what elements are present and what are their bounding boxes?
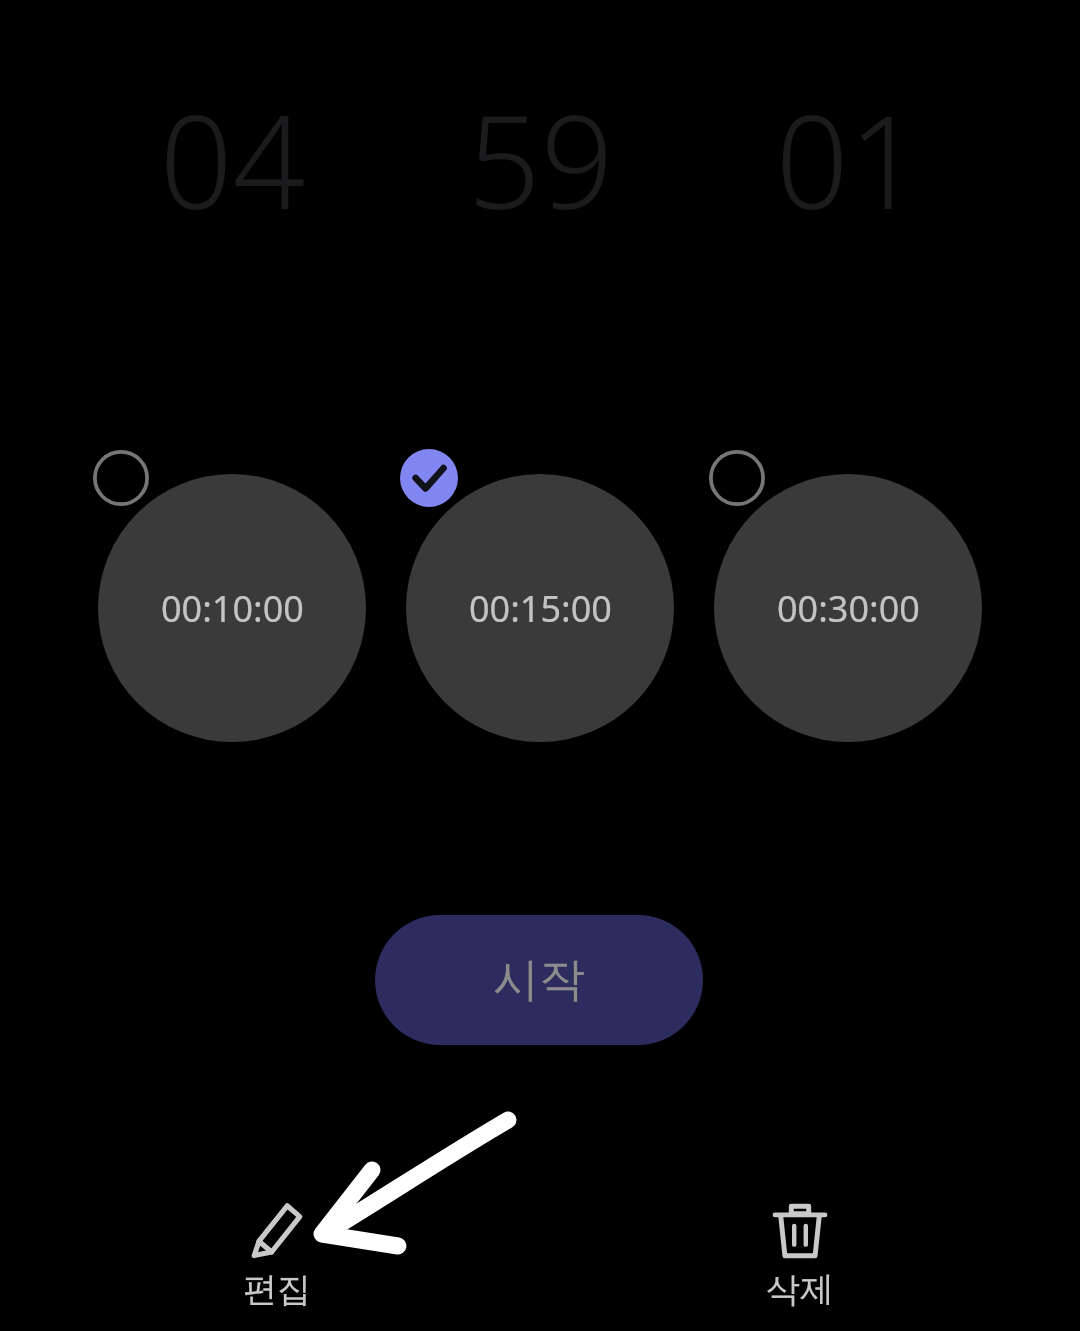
staticText: 삭제 bbox=[766, 1268, 834, 1311]
button[interactable]: 시작 bbox=[375, 915, 703, 1045]
button[interactable]: Select bbox=[708, 449, 766, 507]
button[interactable]: Selected bbox=[400, 449, 458, 507]
staticText: 04 bbox=[159, 72, 306, 232]
button[interactable]: 00:15:00 bbox=[406, 474, 674, 742]
button[interactable]: 00:10:00 bbox=[98, 474, 366, 742]
button[interactable]: 00:30:00 bbox=[714, 474, 982, 742]
button[interactable]: 편집 bbox=[177, 1190, 377, 1320]
staticText: 00:10:00 bbox=[161, 584, 304, 633]
staticText: 00:15:00 bbox=[469, 584, 612, 633]
staticText: 00:30:00 bbox=[777, 584, 920, 633]
button[interactable]: Select bbox=[92, 449, 150, 507]
staticText: 01 bbox=[775, 72, 922, 232]
button[interactable]: 삭제 bbox=[700, 1190, 900, 1320]
staticText: 시작 bbox=[493, 951, 585, 1009]
staticText: 59 bbox=[467, 72, 614, 232]
staticText: 편집 bbox=[243, 1268, 311, 1311]
